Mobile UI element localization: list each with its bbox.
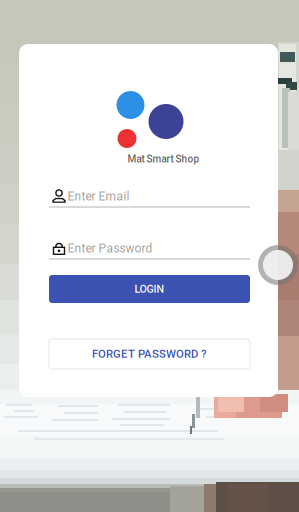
staticText: Enter Password: [67, 241, 152, 256]
staticText: Mat Smart Shop: [127, 153, 199, 165]
button[interactable]: LOGIN: [49, 275, 250, 303]
button[interactable]: FORGET PASSWORD ?: [49, 339, 250, 369]
staticText: LOGIN: [134, 283, 164, 295]
staticText: FORGET PASSWORD ?: [92, 347, 207, 361]
staticText: Enter Email: [67, 189, 129, 204]
